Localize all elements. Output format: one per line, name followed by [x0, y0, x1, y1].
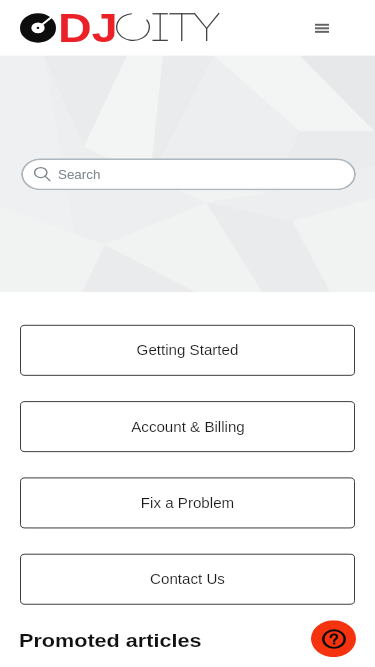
button[interactable]: Menu — [302, 11, 342, 45]
staticText: Search — [58, 167, 101, 181]
button[interactable]: Help — [311, 620, 356, 657]
button[interactable]: Fix a Problem — [20, 477, 355, 528]
button[interactable]: Contact Us — [20, 554, 355, 605]
staticText: Contact Us — [150, 572, 225, 587]
staticText: Promoted articles — [19, 631, 202, 651]
staticText: Getting Started — [136, 343, 239, 358]
staticText: Account & Billing — [131, 419, 245, 435]
button[interactable]: Search — [21, 158, 356, 190]
button[interactable]: Account & Billing — [20, 401, 355, 452]
staticText: Fix a Problem — [141, 495, 234, 511]
staticText: DJ — [58, 5, 118, 50]
button[interactable]: Getting Started — [20, 325, 355, 376]
